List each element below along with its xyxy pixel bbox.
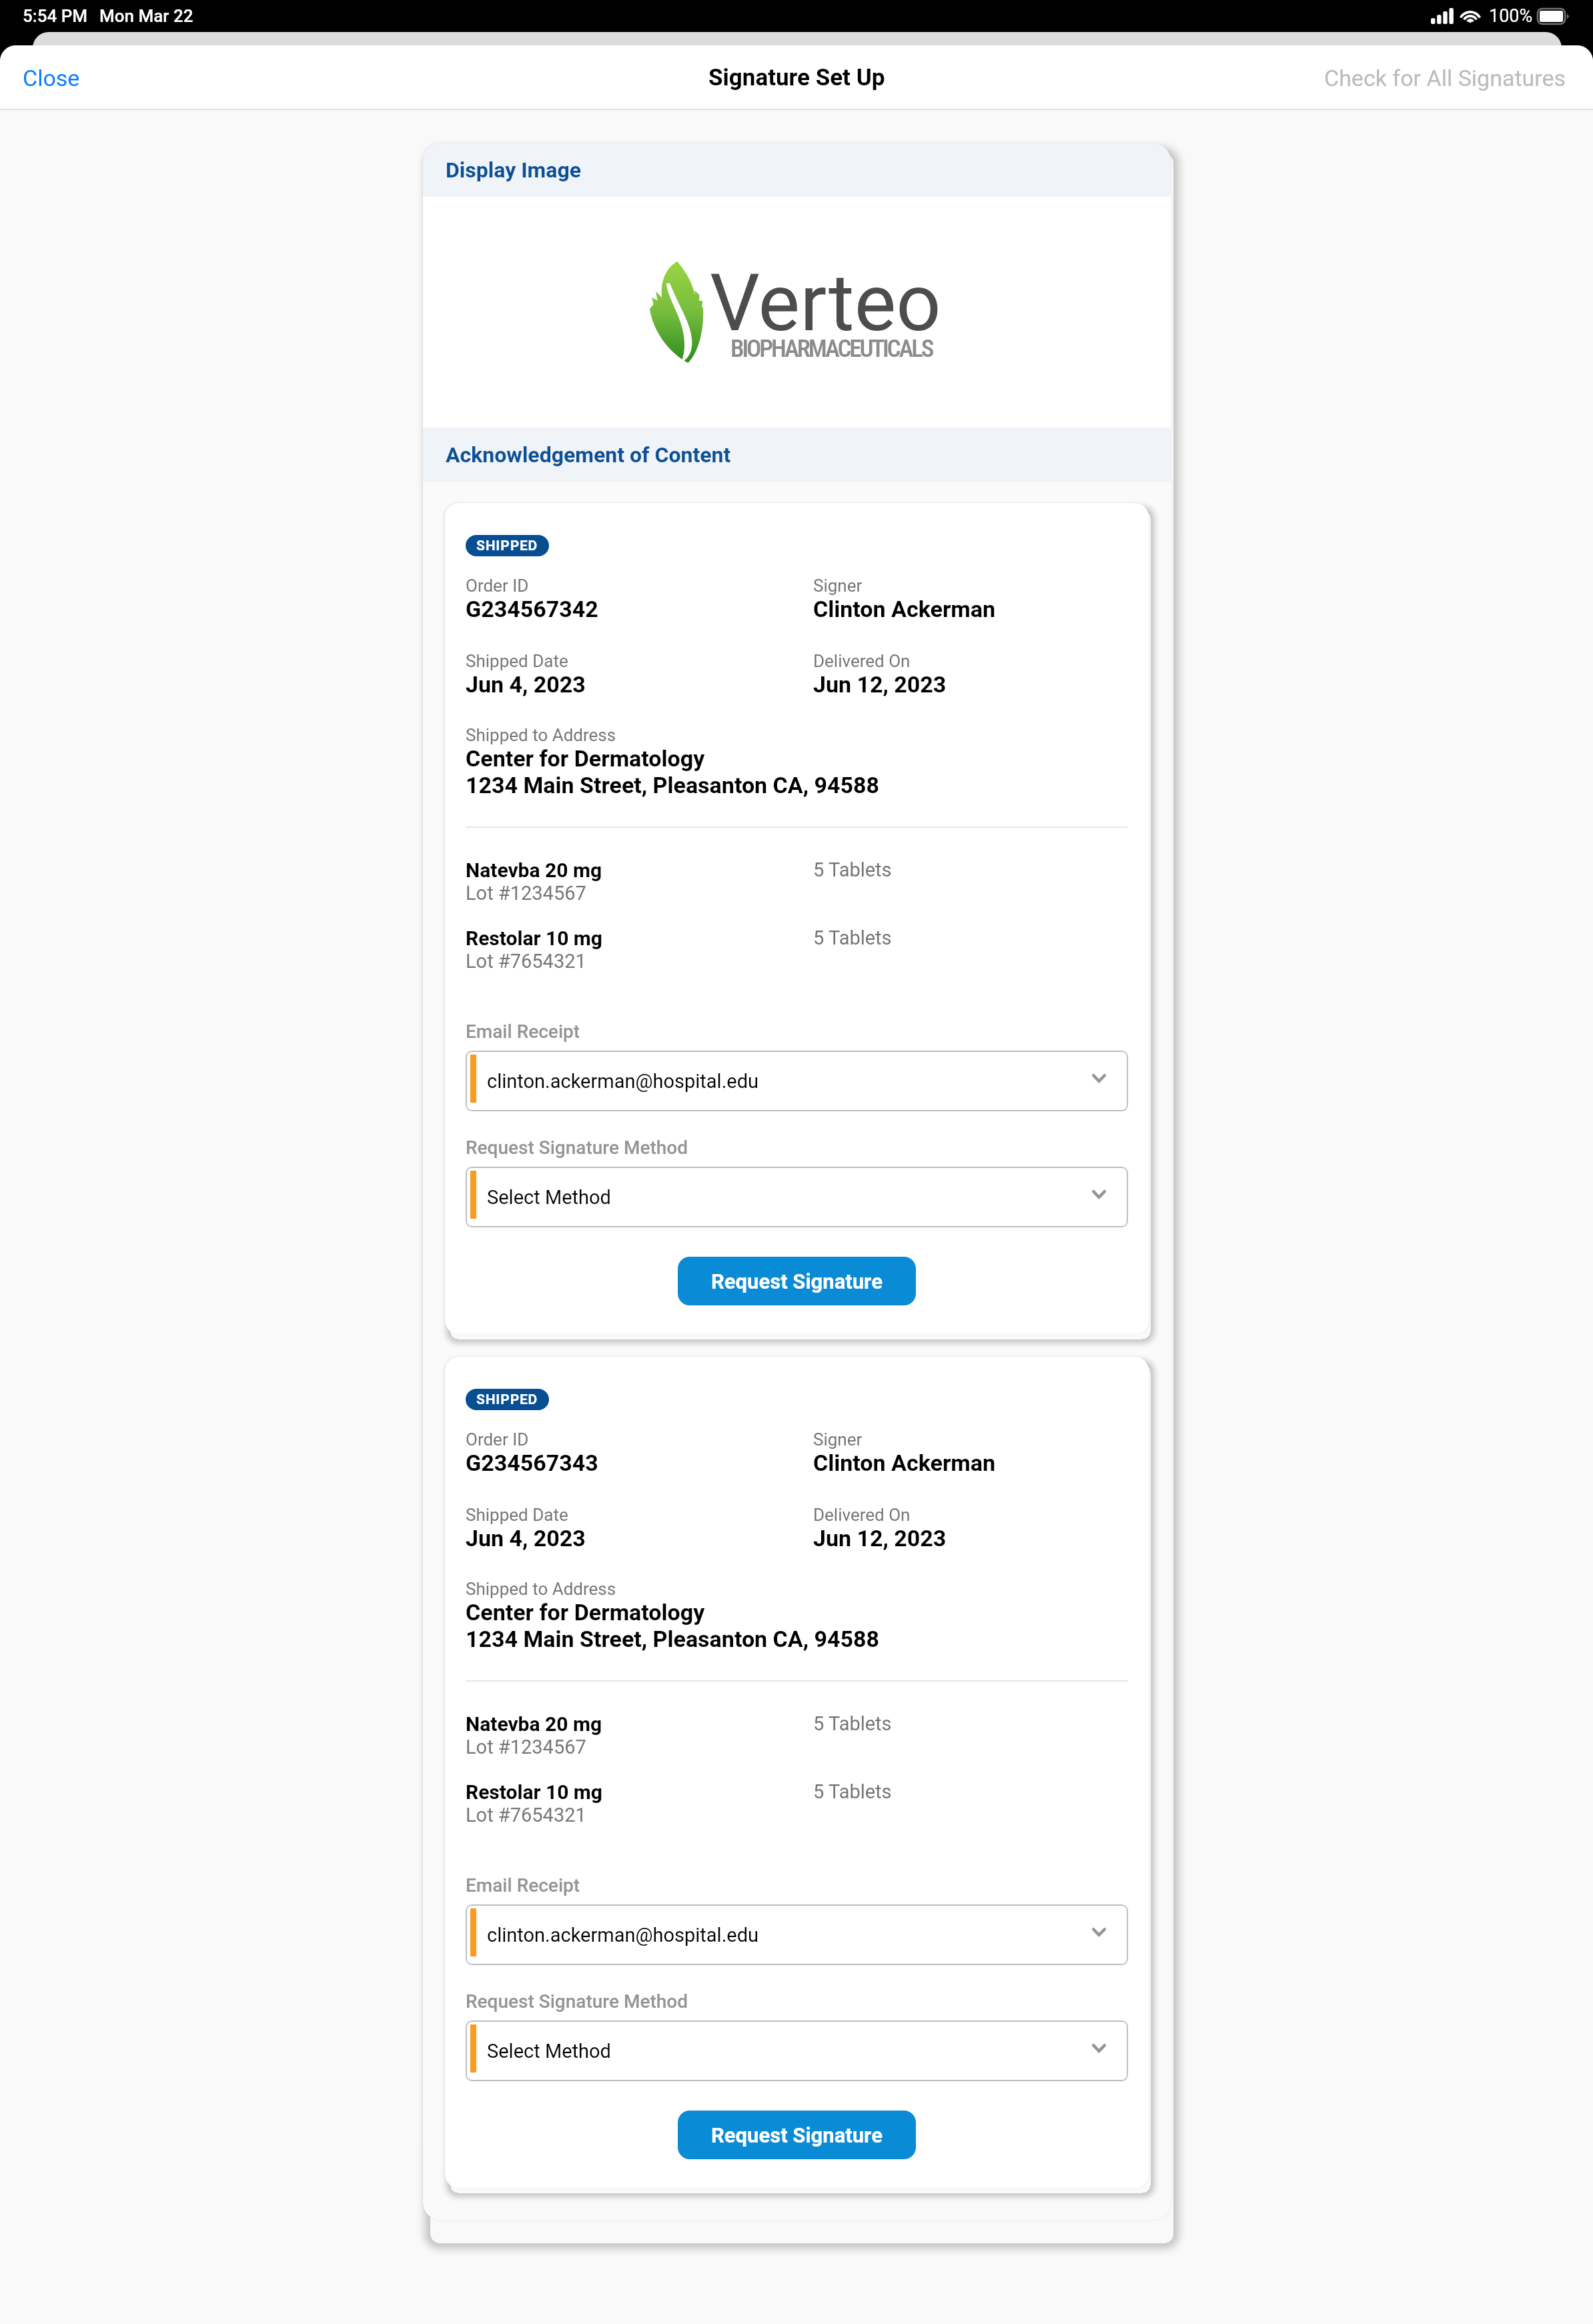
staticText: Select Method <box>487 1186 611 1209</box>
staticText: Shipped Date <box>466 651 568 671</box>
staticText: Lot #1234567 <box>466 882 586 905</box>
staticText: clinton.ackerman@hospital.edu <box>487 1924 759 1946</box>
button[interactable]: Select Method <box>466 1167 1128 1227</box>
other: Open dropdown <box>1092 1074 1106 1083</box>
staticText: Verteo <box>710 257 941 350</box>
staticText: Lot #7654321 <box>466 950 586 973</box>
staticText: 5 Tablets <box>813 927 892 949</box>
staticText: G234567342 <box>466 596 598 622</box>
staticText: Request Signature Method <box>466 1137 688 1159</box>
staticText: 100% <box>1489 5 1533 27</box>
staticText: Restolar 10 mg <box>466 927 602 950</box>
button[interactable]: Close <box>0 53 103 103</box>
staticText: Order ID <box>466 576 529 596</box>
staticText: Jun 4, 2023 <box>466 1525 586 1552</box>
staticText: Check for All Signatures <box>1324 65 1566 91</box>
button[interactable]: clinton.ackerman@hospital.edu <box>466 1904 1128 1965</box>
other: Open dropdown <box>1092 2044 1106 2053</box>
staticText: Shipped to Address <box>466 1579 616 1599</box>
button[interactable]: Select Method <box>466 2020 1128 2081</box>
staticText: 5:54 PM <box>23 6 88 26</box>
other: Open dropdown <box>1092 1190 1106 1199</box>
staticText: Jun 4, 2023 <box>466 671 586 698</box>
staticText: Close <box>23 65 80 91</box>
button[interactable]: Request Signature <box>678 2111 916 2159</box>
staticText: Select Method <box>487 2040 611 2063</box>
staticText: Mon Mar 22 <box>99 6 193 26</box>
staticText: 5 Tablets <box>813 1780 892 1803</box>
staticText: Lot #1234567 <box>466 1736 586 1758</box>
staticText: Lot #7654321 <box>466 1804 586 1826</box>
button[interactable]: clinton.ackerman@hospital.edu <box>466 1051 1128 1111</box>
other: Open dropdown <box>1092 1928 1106 1936</box>
staticText: Request Signature <box>711 2123 883 2147</box>
staticText: Delivered On <box>813 1505 911 1525</box>
staticText: Request Signature <box>711 1269 883 1293</box>
button[interactable]: SHIPPED <box>466 535 549 556</box>
staticText: Clinton Ackerman <box>813 1449 996 1476</box>
staticText: Jun 12, 2023 <box>813 671 947 698</box>
staticText: BIOPHARMACEUTICALS <box>730 334 933 363</box>
button[interactable]: Check for All Signatures <box>1297 53 1593 103</box>
staticText: Display Image <box>446 157 582 183</box>
staticText: Signer <box>813 576 863 596</box>
staticText: 1234 Main Street, Pleasanton CA, 94588 <box>466 1626 880 1652</box>
staticText: Acknowledgement of Content <box>446 442 731 468</box>
staticText: Order ID <box>466 1429 529 1449</box>
staticText: G234567343 <box>466 1449 598 1476</box>
staticText: Shipped to Address <box>466 725 616 745</box>
staticText: SHIPPED <box>476 538 538 554</box>
staticText: SHIPPED <box>476 1391 538 1408</box>
staticText: Natevba 20 mg <box>466 858 602 882</box>
staticText: Natevba 20 mg <box>466 1712 602 1736</box>
staticText: 5 Tablets <box>813 1712 892 1735</box>
staticText: 5 Tablets <box>813 858 892 881</box>
staticText: Signature Set Up <box>708 64 885 91</box>
staticText: Jun 12, 2023 <box>813 1525 947 1552</box>
staticText: Clinton Ackerman <box>813 596 996 622</box>
button[interactable]: Request Signature <box>678 1257 916 1305</box>
staticText: Restolar 10 mg <box>466 1780 602 1804</box>
staticText: Signer <box>813 1429 863 1449</box>
staticText: 1234 Main Street, Pleasanton CA, 94588 <box>466 772 880 798</box>
staticText: clinton.ackerman@hospital.edu <box>487 1070 759 1093</box>
staticText: Center for Dermatology <box>466 745 705 772</box>
button[interactable]: SHIPPED <box>466 1389 549 1410</box>
staticText: Email Receipt <box>466 1874 580 1896</box>
staticText: Request Signature Method <box>466 1990 688 2012</box>
staticText: Delivered On <box>813 651 911 671</box>
staticText: Center for Dermatology <box>466 1599 705 1626</box>
staticText: Email Receipt <box>466 1021 580 1043</box>
staticText: Shipped Date <box>466 1505 568 1525</box>
